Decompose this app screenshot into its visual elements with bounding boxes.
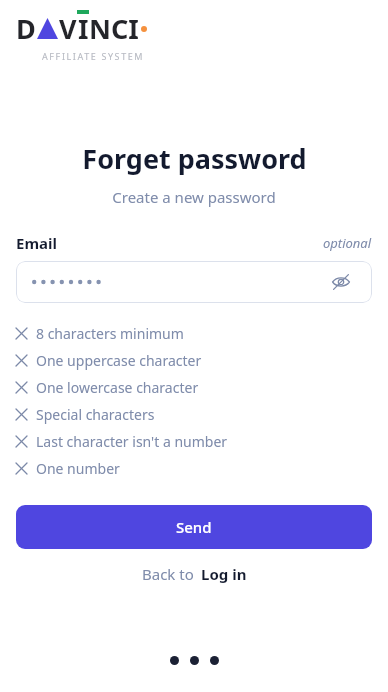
- staticText: One lowercase character: [36, 378, 199, 397]
- staticText: Send: [176, 517, 212, 537]
- staticText: Forget password: [82, 140, 307, 177]
- staticText: NCI: [89, 10, 139, 47]
- staticText: 8 characters minimum: [36, 324, 184, 343]
- staticText: Special characters: [36, 405, 155, 424]
- staticText: I: [78, 10, 89, 47]
- staticText: AFFILIATE SYSTEM: [42, 50, 145, 62]
- staticText: Create a new password: [112, 187, 276, 207]
- staticText: Email: [16, 233, 57, 253]
- staticText: Back to: [142, 564, 194, 584]
- staticText: Log in: [201, 564, 247, 584]
- staticText: V: [59, 10, 77, 47]
- staticText: optional: [323, 234, 372, 252]
- button[interactable]: Toggle password visibility: [16, 261, 372, 303]
- button[interactable]: Send: [16, 505, 372, 549]
- staticText: One uppercase character: [36, 351, 202, 370]
- staticText: D: [16, 10, 36, 47]
- staticText: One number: [36, 459, 120, 478]
- staticText: Last character isn't a number: [36, 432, 228, 451]
- button[interactable]: Log in: [201, 564, 247, 584]
- button[interactable]: Toggle password visibility: [326, 267, 356, 297]
